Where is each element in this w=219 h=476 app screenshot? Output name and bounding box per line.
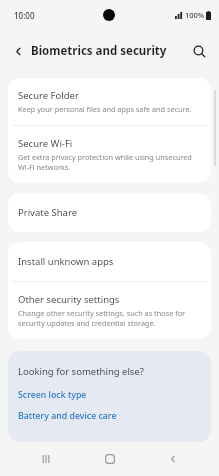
button[interactable]: Other security settings <box>8 282 211 339</box>
button[interactable]: Install unknown apps <box>8 242 211 281</box>
button[interactable]: Private Share <box>8 193 211 232</box>
button[interactable]: Home <box>93 442 127 476</box>
staticText: Looking for something else? <box>18 365 144 378</box>
button[interactable]: Recents <box>29 442 63 476</box>
staticText: Other security settings <box>18 293 120 306</box>
staticText: Biometrics and security <box>31 43 167 59</box>
staticText: 100% <box>185 10 205 20</box>
staticText: Secure Folder <box>18 89 79 102</box>
staticText: 10:00 <box>14 10 35 21</box>
staticText: Get extra privacy protection while using… <box>18 152 199 172</box>
button[interactable]: Back <box>6 39 30 63</box>
staticText: Change other security settings, such as … <box>18 308 199 328</box>
button[interactable]: Battery and device care <box>18 410 117 422</box>
staticText: Screen lock type <box>18 389 87 401</box>
staticText: Private Share <box>18 206 78 219</box>
staticText: Battery and device care <box>18 410 117 422</box>
staticText: Install unknown apps <box>18 255 114 268</box>
button[interactable]: Back <box>156 442 190 476</box>
staticText: Keep your personal files and apps safe a… <box>18 104 192 114</box>
button[interactable]: Secure Folder <box>8 78 211 125</box>
button[interactable]: Secure Wi-Fi <box>8 126 211 183</box>
staticText: Secure Wi-Fi <box>18 137 73 150</box>
button[interactable]: Search <box>187 39 211 63</box>
button[interactable]: Screen lock type <box>18 389 87 401</box>
